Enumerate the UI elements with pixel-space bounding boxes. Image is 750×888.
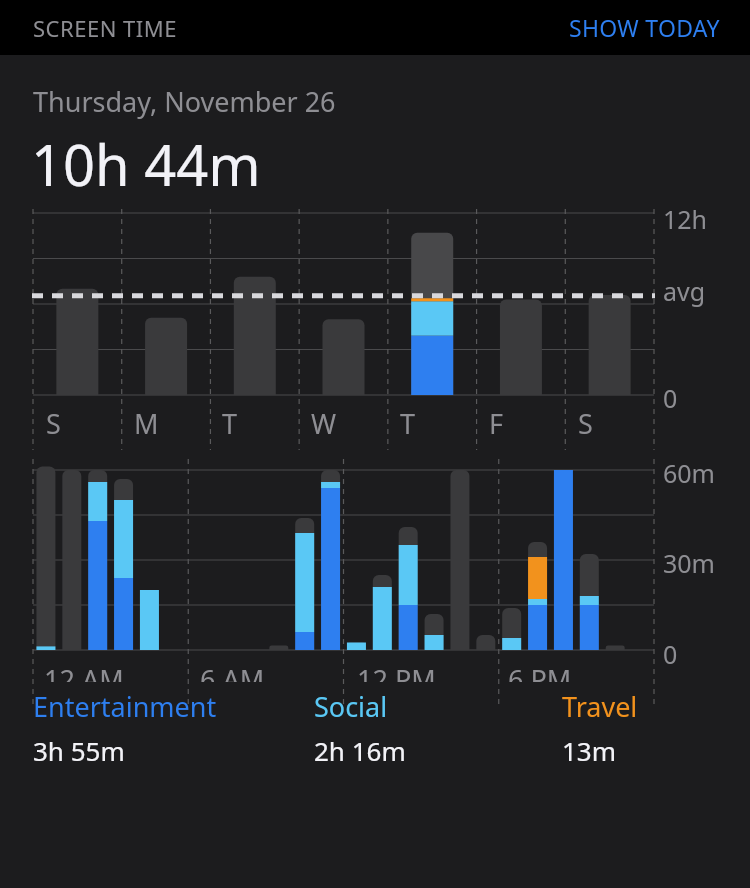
staticText: Entertainment — [33, 688, 217, 725]
staticText: S — [578, 405, 593, 442]
staticText: 12 PM — [357, 661, 436, 682]
staticText: 13m — [562, 733, 617, 768]
staticText: 30m — [663, 546, 715, 580]
staticText: 12 AM — [44, 661, 124, 682]
staticText: Travel — [562, 688, 638, 725]
staticText: S — [46, 405, 61, 442]
staticText: M — [134, 405, 159, 442]
staticText: T — [222, 405, 238, 442]
staticText: 6 PM — [508, 661, 572, 682]
button[interactable]: Social — [314, 688, 562, 768]
button[interactable]: SHOW TODAY — [569, 12, 720, 43]
button[interactable]: Travel — [562, 688, 750, 768]
staticText: 60m — [663, 456, 715, 490]
staticText: 2h 16m — [314, 733, 406, 768]
button[interactable]: Entertainment — [33, 688, 314, 768]
staticText: F — [489, 405, 504, 442]
staticText: 6 AM — [200, 661, 265, 682]
staticText: Thursday, November 26 — [33, 83, 336, 120]
staticText: T — [400, 405, 416, 442]
staticText: 3h 55m — [33, 733, 125, 768]
staticText: 0 — [663, 381, 678, 415]
staticText: 12h — [663, 202, 708, 236]
staticText: 10h 44m — [31, 126, 261, 202]
staticText: W — [311, 405, 337, 442]
staticText: 0 — [663, 637, 678, 671]
staticText: avg — [663, 274, 706, 308]
button[interactable]: SCREEN TIME — [33, 13, 177, 43]
staticText: Social — [314, 688, 388, 725]
